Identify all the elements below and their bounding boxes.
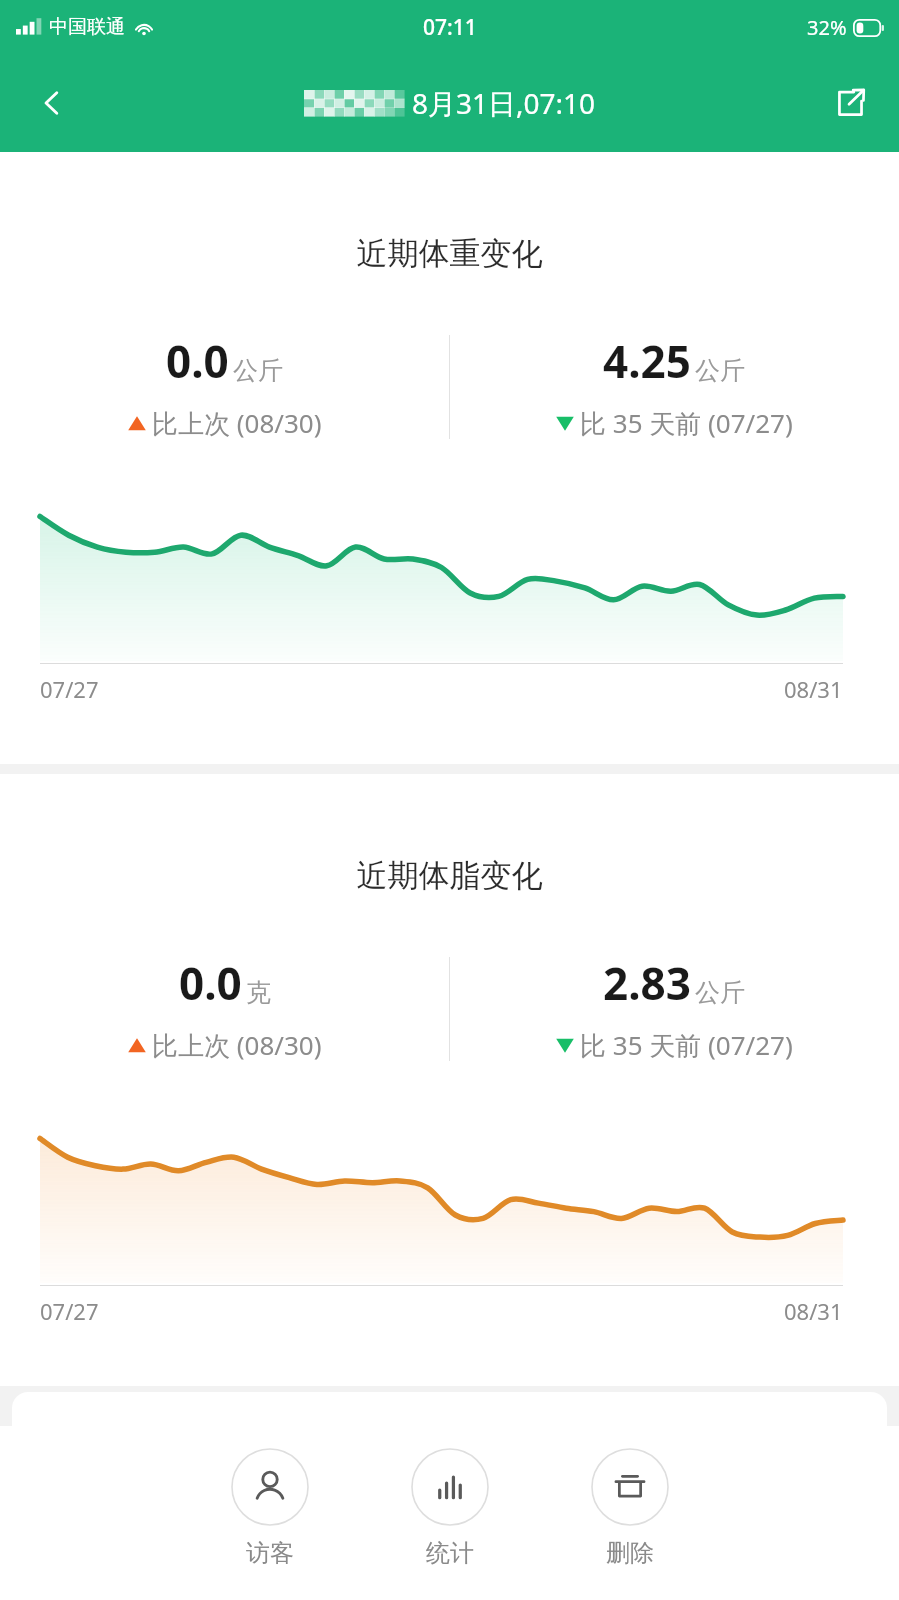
staticText: 0.0: [179, 953, 242, 1013]
staticText: 07/27: [40, 1296, 99, 1326]
button[interactable]: Back: [24, 75, 80, 131]
staticText: 公斤: [233, 355, 283, 386]
staticText: 8月31日,07:10: [412, 84, 596, 122]
button[interactable]: 访客: [210, 1448, 330, 1568]
staticText: 07/27: [40, 674, 99, 704]
button[interactable]: 2.83: [449, 953, 899, 1063]
staticText: 08/31: [784, 1296, 843, 1326]
staticText: 近期体重变化: [0, 234, 899, 273]
staticText: 公斤: [695, 977, 745, 1008]
staticText: 统计: [426, 1538, 474, 1568]
staticText: 2.83: [603, 953, 691, 1013]
staticText: 32%: [807, 14, 847, 41]
staticText: 删除: [606, 1538, 654, 1568]
staticText: 0.0: [166, 331, 229, 391]
staticText: 08/31: [784, 674, 843, 704]
button[interactable]: 0.0: [0, 331, 449, 441]
button[interactable]: Share: [823, 76, 877, 130]
staticText: 克: [246, 977, 271, 1008]
staticText: 比 35 天前 (07/27): [580, 405, 793, 441]
staticText: 近期体脂变化: [0, 856, 899, 895]
button[interactable]: 统计: [390, 1448, 510, 1568]
staticText: 中国联通: [49, 15, 125, 39]
staticText: 比上次 (08/30): [152, 1027, 322, 1063]
button[interactable]: 0.0: [0, 953, 449, 1063]
staticText: 07:11: [423, 13, 477, 42]
staticText: 4.25: [603, 331, 691, 391]
staticText: 公斤: [695, 355, 745, 386]
staticText: 访客: [246, 1538, 294, 1568]
staticText: 比上次 (08/30): [152, 405, 322, 441]
button[interactable]: 删除: [570, 1448, 690, 1568]
staticText: 比 35 天前 (07/27): [580, 1027, 793, 1063]
button[interactable]: 4.25: [449, 331, 899, 441]
